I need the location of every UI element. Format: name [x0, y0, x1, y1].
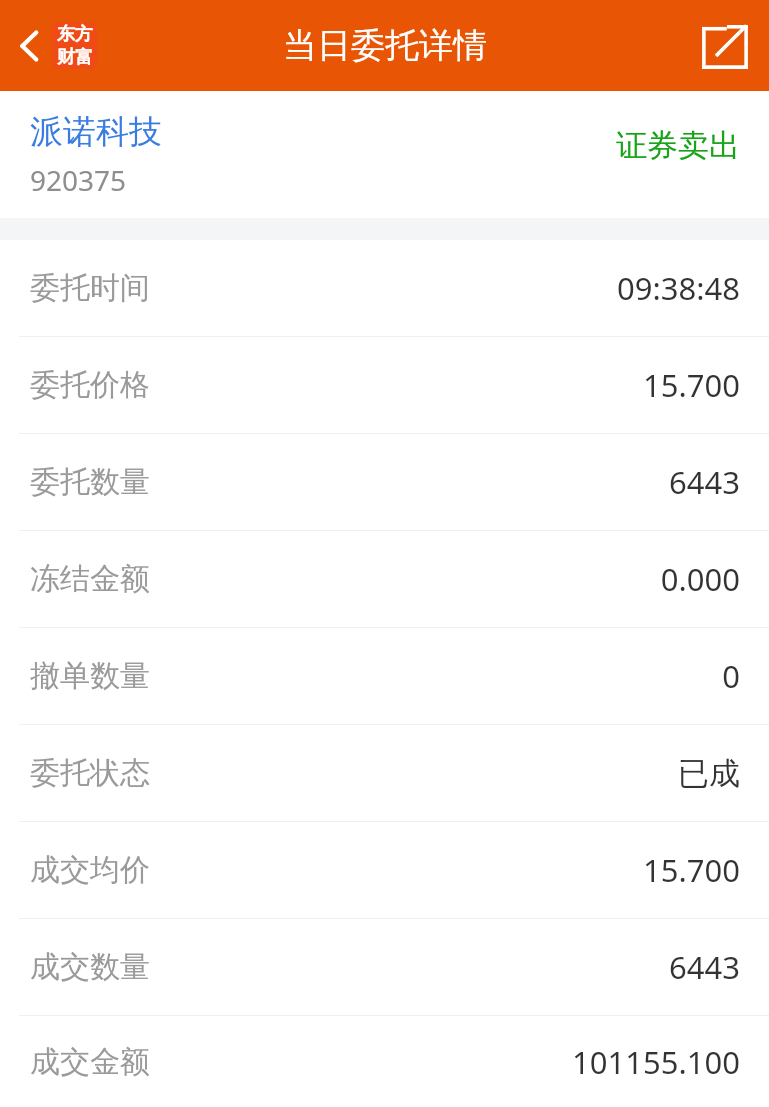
staticText: 成交数量: [30, 948, 150, 986]
staticText: 委托数量: [30, 463, 150, 501]
staticText: 冻结金额: [30, 560, 150, 598]
button[interactable]: 委托时间: [0, 240, 769, 336]
button[interactable]: 委托数量: [0, 434, 769, 530]
staticText: 成交金额: [30, 1043, 150, 1081]
staticText: 6443: [669, 461, 740, 503]
staticText: 东方: [57, 23, 93, 46]
staticText: 0: [722, 655, 740, 697]
staticText: 6443: [669, 946, 740, 988]
staticText: 15.700: [643, 849, 740, 891]
staticText: 当日委托详情: [283, 24, 487, 67]
staticText: 0.000: [660, 558, 740, 600]
button[interactable]: 成交金额: [0, 1016, 769, 1107]
button[interactable]: 委托状态: [0, 725, 769, 821]
staticText: 成交均价: [30, 851, 150, 889]
staticText: 撤单数量: [30, 657, 150, 695]
staticText: 09:38:48: [616, 267, 740, 309]
staticText: 派诺科技: [30, 111, 162, 153]
staticText: 财富: [57, 46, 93, 69]
button[interactable]: 派诺科技: [0, 91, 769, 218]
button[interactable]: Back: [0, 0, 107, 91]
staticText: 委托时间: [30, 269, 150, 307]
button[interactable]: 冻结金额: [0, 531, 769, 627]
button[interactable]: 撤单数量: [0, 628, 769, 724]
button[interactable]: 成交数量: [0, 919, 769, 1015]
staticText: 920375: [30, 161, 127, 199]
button[interactable]: Share: [681, 0, 769, 91]
staticText: 已成: [678, 754, 740, 793]
staticText: 15.700: [643, 364, 740, 406]
staticText: 证券卖出: [616, 126, 740, 165]
staticText: 101155.100: [572, 1041, 740, 1083]
button[interactable]: 委托价格: [0, 337, 769, 433]
button[interactable]: 成交均价: [0, 822, 769, 918]
staticText: 委托状态: [30, 754, 150, 792]
staticText: 委托价格: [30, 366, 150, 404]
